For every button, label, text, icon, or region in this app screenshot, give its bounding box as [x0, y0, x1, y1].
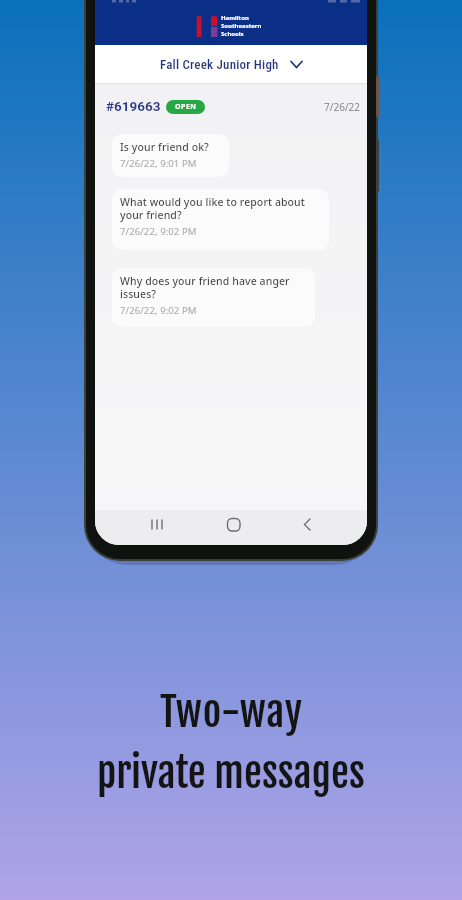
button[interactable]: Fall Creek Junior High — [95, 45, 367, 83]
staticText: 7/26/22, 9:02 PM — [120, 304, 197, 317]
staticText: Southeastern — [221, 22, 262, 30]
button[interactable]: What would you like to report about your… — [112, 189, 329, 250]
staticText: Why does your friend have anger issues? — [120, 274, 290, 301]
button[interactable]: Is your friend ok? — [112, 134, 229, 177]
staticText: OPEN — [175, 102, 197, 112]
button[interactable]: Why does your friend have anger issues? — [112, 268, 315, 327]
staticText: What would you like to report about your… — [120, 195, 305, 222]
staticText: Fall Creek Junior High — [160, 57, 279, 72]
staticText: 7/26/22, 9:02 PM — [120, 225, 197, 238]
staticText: Two-way — [160, 687, 303, 737]
staticText: 7/26/22, 9:01 PM — [120, 157, 197, 170]
staticText: 7/26/22 — [324, 100, 361, 114]
staticText: Is your friend ok? — [120, 140, 209, 154]
staticText: Schools — [221, 30, 244, 38]
staticText: private messages — [97, 748, 365, 798]
staticText: Hamilton — [221, 14, 249, 22]
staticText: #619663 — [106, 98, 161, 114]
button[interactable]: OPEN — [166, 100, 205, 114]
